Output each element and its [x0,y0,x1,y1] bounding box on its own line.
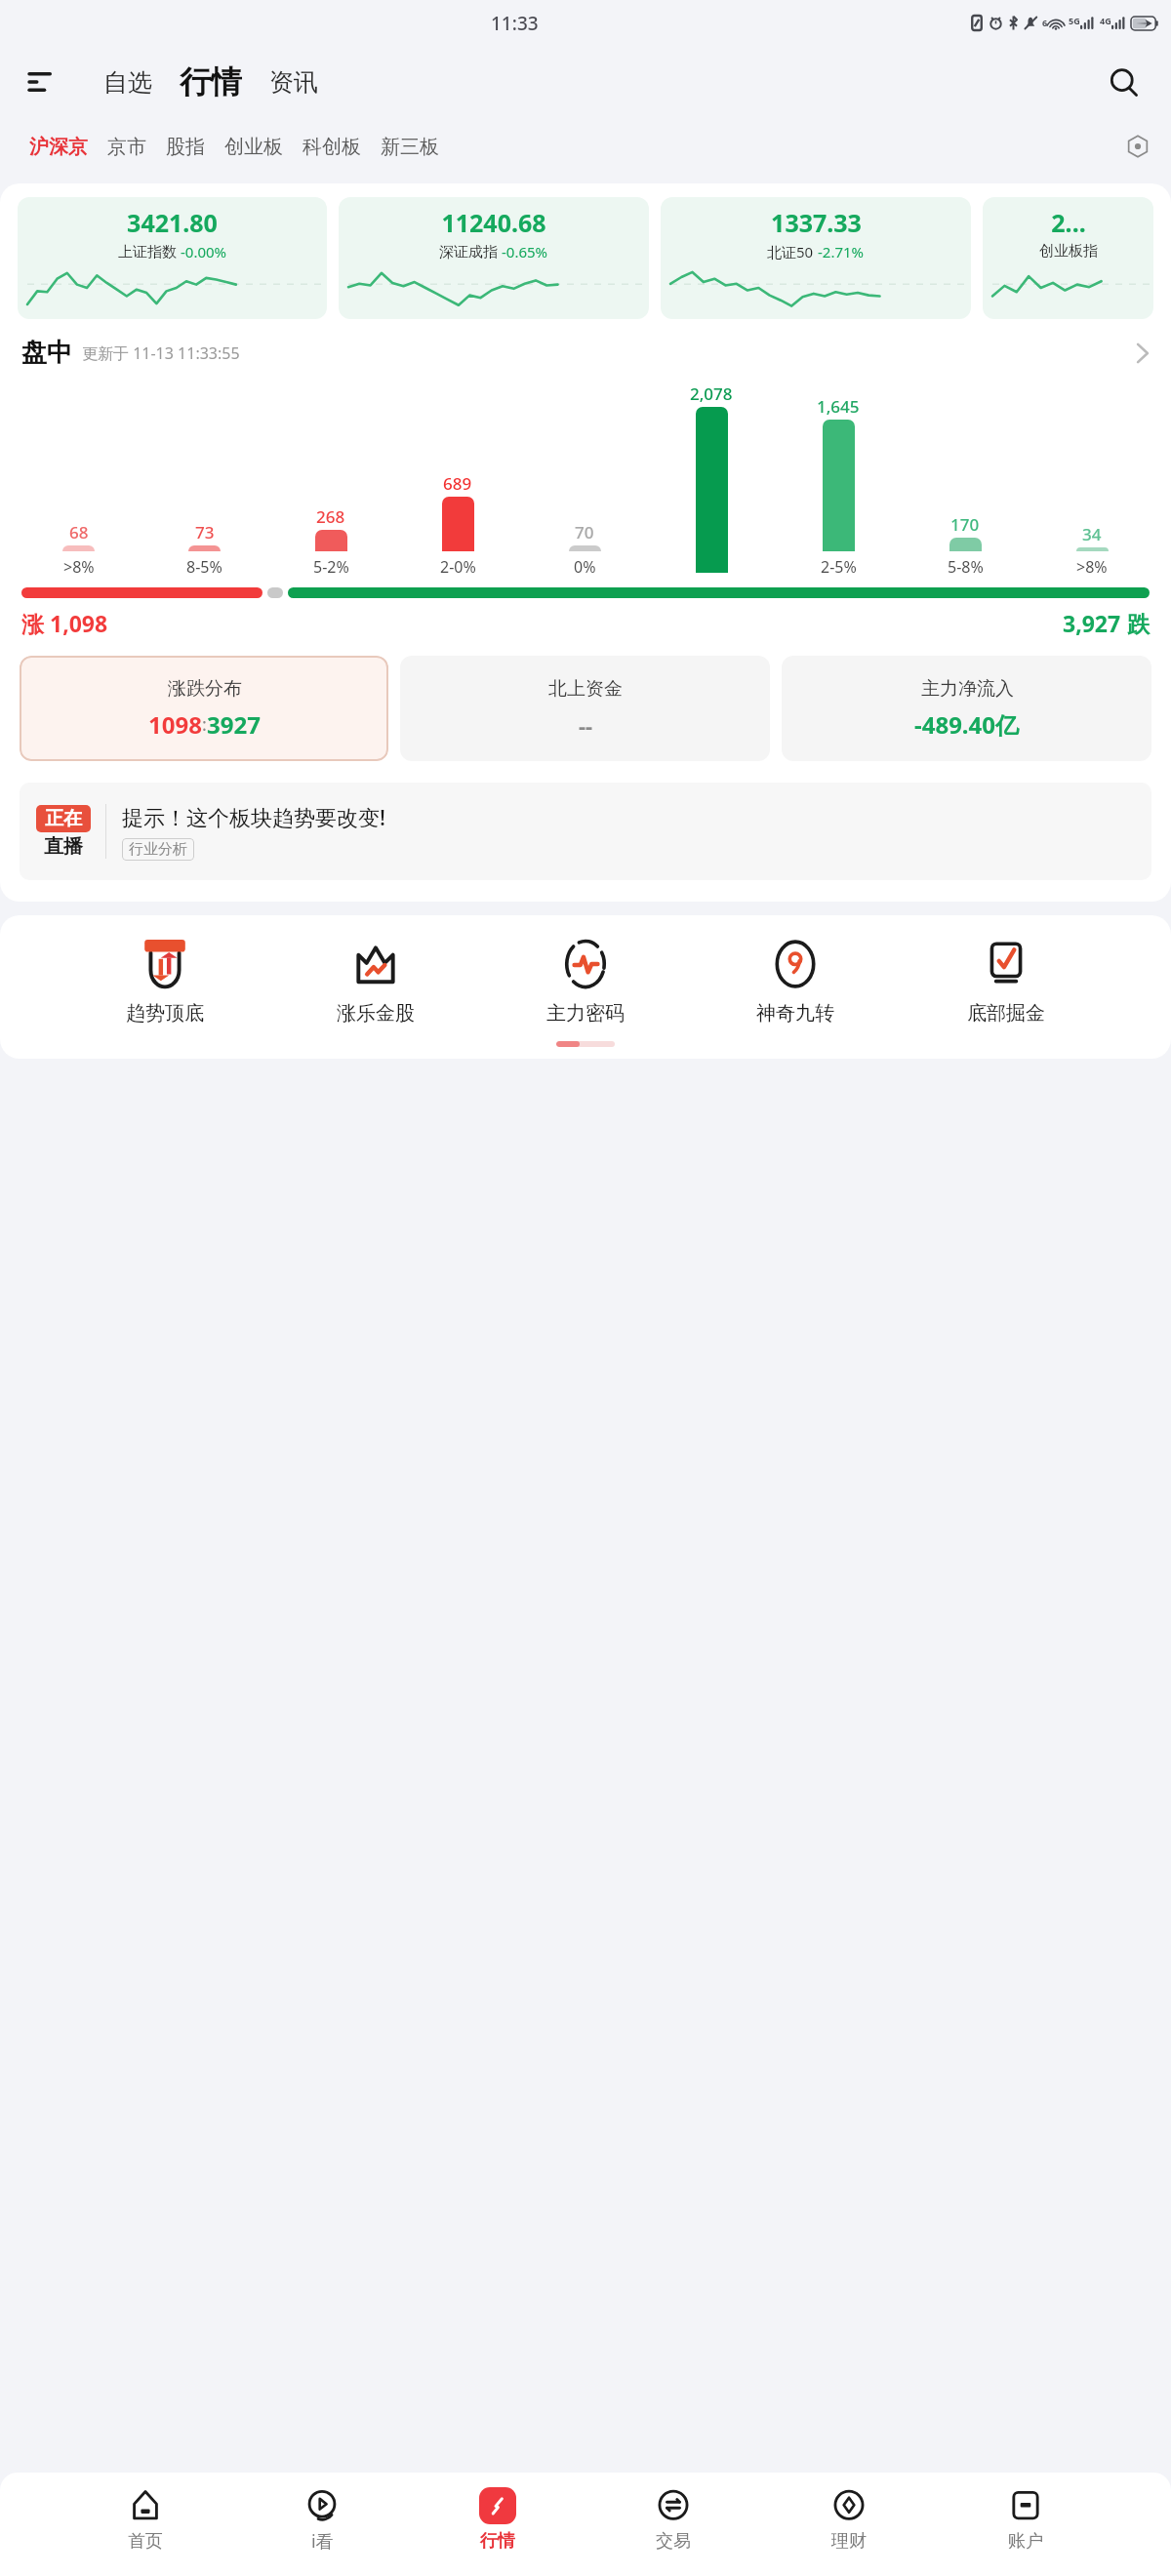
button[interactable]: 主力密码 [541,935,630,1029]
button[interactable]: 1337.33 [661,197,971,319]
staticText: 理财 [831,2530,867,2553]
staticText: 提示！这个板块趋势要改变! [122,802,386,831]
staticText: 涨乐金股 [337,1001,415,1026]
staticText: 涨跌分布 [168,677,242,701]
button[interactable]: 科创板 [293,129,371,165]
staticText: -489.40亿 [914,708,1020,741]
staticText: 5-2% [313,556,349,578]
staticText: 6 [1042,17,1048,28]
staticText: 行情 [480,2530,515,2553]
button[interactable]: 交易 [643,2483,704,2556]
staticText: 交易 [656,2530,691,2553]
staticText: 创业板指 [1039,242,1098,261]
button[interactable]: 11240.68 [339,197,649,319]
staticText: 直播 [44,834,83,859]
button[interactable]: 涨乐金股 [331,935,421,1029]
staticText: >8% [1076,556,1108,578]
button[interactable]: 神奇九转 [750,935,840,1029]
staticText: -0.65% [502,242,548,262]
staticText: 深证成指 [439,243,498,262]
staticText: 沪深京 [29,135,88,159]
staticText: 1,645 [817,395,860,418]
button[interactable]: 行情 [467,2483,528,2556]
staticText: 8-5% [186,556,222,578]
staticText: 行业分析 [129,840,187,859]
button[interactable]: 主力净流入 [782,656,1151,761]
staticText: 73 [195,521,215,543]
button[interactable]: 涨跌分布 [20,656,388,761]
button[interactable]: 盘中 [0,337,1171,369]
button[interactable]: 新三板 [371,129,449,165]
staticText: 34 [1082,523,1102,545]
staticText: 北证50 [767,242,814,262]
staticText: 170 [950,513,980,536]
button[interactable]: i看 [292,2482,352,2557]
staticText: >8% [63,556,95,578]
staticText: 4G [1100,15,1111,26]
staticText: 更新于 11-13 11:33:55 [82,342,240,364]
staticText: 0% [574,556,596,578]
staticText: i看 [311,2529,334,2554]
staticText: 盘中 [21,337,72,369]
staticText: 2-0% [440,556,476,578]
staticText: 11:33 [491,11,539,36]
staticText: 主力密码 [546,1001,625,1026]
staticText: 神奇九转 [756,1001,834,1026]
staticText: 2,078 [690,382,733,405]
button[interactable]: Edit categories [1118,127,1157,166]
staticText: -0.00% [181,242,227,262]
staticText: 3,927 [1063,608,1121,638]
staticText: -- [579,710,593,740]
button[interactable]: Search [1101,60,1146,104]
staticText: 涨 [21,608,50,638]
staticText: 新三板 [381,135,439,159]
button[interactable]: 账户 [995,2483,1056,2556]
staticText: 2... [1051,206,1086,239]
staticText: 自选 [103,67,152,98]
staticText: 68 [69,521,89,543]
staticText: 1337.33 [771,206,862,239]
staticText: : [202,712,207,737]
button[interactable]: 创业板 [215,129,293,165]
button[interactable]: 自选 [94,61,162,103]
button[interactable]: 北上资金 [400,656,770,761]
staticText: 创业板 [224,135,283,159]
staticText: 3927 [207,708,261,741]
staticText: -2.71% [818,242,865,262]
staticText: 正在 [45,807,82,830]
button[interactable]: 沪深京 [20,129,98,165]
button[interactable]: 首页 [115,2483,176,2556]
button[interactable]: 底部掘金 [961,935,1051,1029]
button[interactable]: 资讯 [260,61,328,103]
staticText: 北上资金 [548,677,623,701]
staticText: 行情 [180,62,242,101]
staticText: 11240.68 [441,206,546,239]
staticText: 3421.80 [127,206,218,239]
staticText: 主力净流入 [921,677,1014,701]
staticText: 股指 [166,135,205,159]
button[interactable]: 京市 [98,129,156,165]
staticText: 5-8% [948,556,984,578]
staticText: 底部掘金 [967,1001,1045,1026]
button[interactable]: 2... [983,197,1153,319]
staticText: 跌 [1121,608,1150,638]
staticText: 趋势顶底 [126,1001,204,1026]
staticText: 资讯 [269,67,318,98]
staticText: 京市 [107,135,146,159]
staticText: 1,098 [50,608,108,638]
button[interactable]: 理财 [819,2483,879,2556]
button[interactable]: 行情 [172,60,250,103]
staticText: 70 [575,521,594,543]
button[interactable]: 正在 [20,783,1151,880]
staticText: 268 [316,505,345,528]
staticText: 首页 [128,2530,163,2553]
staticText: 1098 [148,708,202,741]
staticText: 5G [1069,15,1080,26]
button[interactable]: Menu [21,61,62,102]
staticText: 上证指数 [118,243,177,262]
staticText: 科创板 [303,135,361,159]
button[interactable]: 股指 [156,129,215,165]
button[interactable]: 趋势顶底 [120,935,210,1029]
staticText: 账户 [1008,2530,1043,2553]
button[interactable]: 3421.80 [18,197,327,319]
